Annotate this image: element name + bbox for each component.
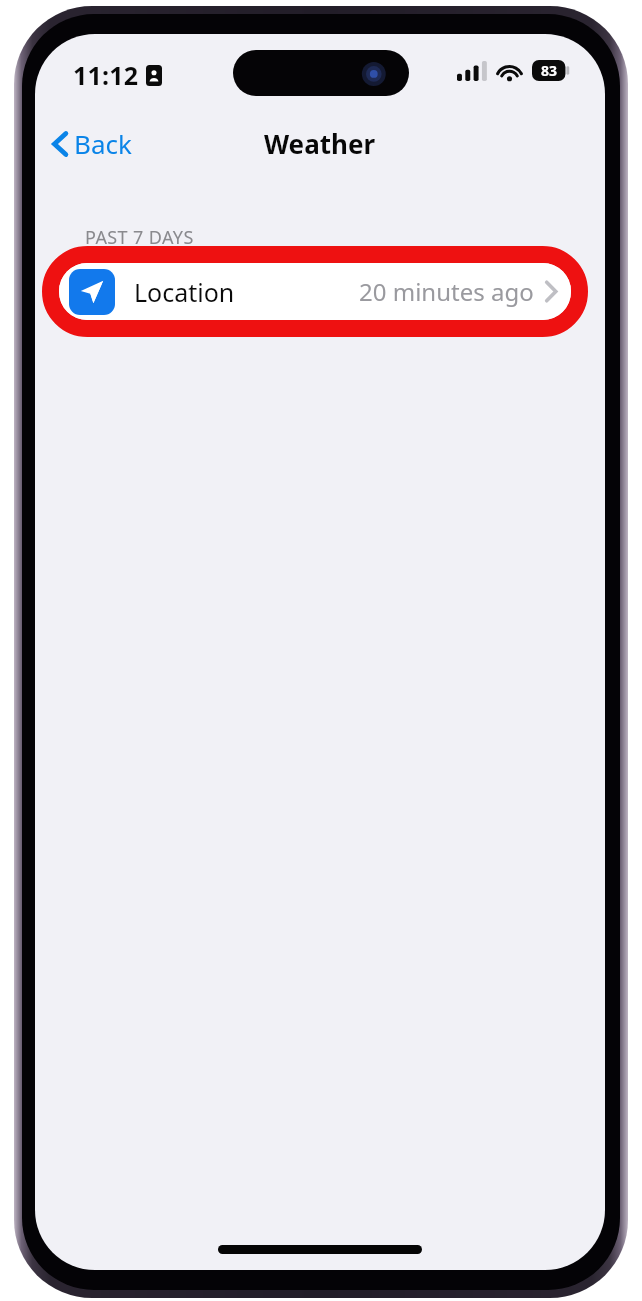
- staticText: 83: [541, 61, 558, 80]
- staticText: 11:12: [73, 58, 139, 92]
- other: Location: [69, 269, 115, 315]
- staticText: Back: [74, 126, 132, 161]
- staticText: Location: [134, 275, 235, 309]
- button[interactable]: Back: [45, 121, 140, 166]
- staticText: 20 minutes ago: [359, 275, 534, 308]
- button[interactable]: Location: [59, 263, 571, 320]
- staticText: Weather: [264, 126, 376, 161]
- staticText: PAST 7 DAYS: [85, 225, 194, 250]
